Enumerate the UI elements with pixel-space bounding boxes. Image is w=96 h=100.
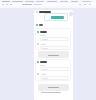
button[interactable] <box>40 37 69 41</box>
button[interactable] <box>40 67 69 71</box>
button[interactable] <box>38 51 69 58</box>
button[interactable] <box>40 76 69 80</box>
button[interactable] <box>38 84 69 91</box>
button[interactable]: Account <box>69 12 73 16</box>
button[interactable]: Primary action <box>51 16 64 19</box>
button[interactable] <box>40 46 69 50</box>
